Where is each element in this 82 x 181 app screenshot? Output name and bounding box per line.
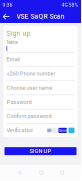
button[interactable]: Home <box>40 171 43 174</box>
staticText: Send <box>59 128 67 133</box>
staticText: 4G 58% <box>61 2 78 8</box>
staticText: Confirm password <box>6 113 51 119</box>
staticText: Choose user name <box>6 84 52 91</box>
button[interactable]: Send <box>58 128 67 133</box>
staticText: 9:36 <box>2 2 12 8</box>
staticText: Password <box>6 99 31 105</box>
button[interactable]: Back <box>0 10 13 23</box>
staticText: Name <box>6 40 17 45</box>
staticText: Verification <box>6 127 33 134</box>
button[interactable]: Back <box>17 170 22 175</box>
staticText: Sign up <box>6 30 30 37</box>
button[interactable]: Refresh verification code <box>68 128 74 133</box>
button[interactable]: Recent apps <box>60 171 64 174</box>
staticText: +260 Phone number <box>6 70 55 77</box>
button[interactable]: SIGN UP <box>4 147 76 155</box>
staticText: Email <box>6 56 19 63</box>
staticText: SIGN UP <box>29 148 51 154</box>
staticText: VSE SaQR Scan <box>16 13 64 20</box>
